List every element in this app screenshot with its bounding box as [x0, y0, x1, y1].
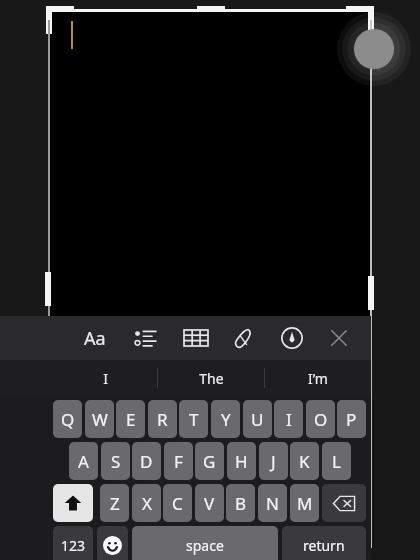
button[interactable]: U	[243, 400, 272, 438]
button[interactable]: space	[132, 526, 278, 560]
staticText: The	[199, 369, 224, 388]
button[interactable]: I’m	[265, 360, 371, 396]
button[interactable]: T	[179, 400, 208, 438]
staticText: space	[186, 536, 224, 555]
button[interactable]: V	[195, 484, 224, 522]
button[interactable]: H	[227, 442, 256, 480]
staticText: L	[332, 450, 341, 473]
button[interactable]: Text format	[74, 320, 116, 356]
button[interactable]: F	[164, 442, 193, 480]
staticText: Y	[221, 408, 231, 431]
button[interactable]: Emoji	[97, 526, 128, 560]
button[interactable]: S	[101, 442, 130, 480]
button[interactable]: D	[132, 442, 161, 480]
staticText: Aa	[84, 326, 106, 351]
staticText: K	[299, 450, 310, 473]
staticText: Z	[110, 492, 120, 515]
staticText: P	[346, 408, 357, 431]
staticText: C	[172, 492, 183, 515]
staticText: 123	[61, 536, 86, 555]
button[interactable]: L	[322, 442, 351, 480]
staticText: J	[271, 450, 276, 473]
button[interactable]: G	[195, 442, 224, 480]
staticText: N	[266, 492, 279, 515]
button[interactable]: R	[148, 400, 177, 438]
staticText: return	[303, 536, 345, 555]
staticText: B	[235, 492, 247, 515]
button[interactable]: return	[282, 526, 366, 560]
button[interactable]: Attach	[223, 320, 265, 356]
button[interactable]: I	[274, 400, 303, 438]
staticText: F	[174, 450, 183, 473]
button[interactable]: M	[290, 484, 319, 522]
button[interactable]: C	[163, 484, 192, 522]
staticText: T	[189, 408, 199, 431]
button[interactable]: X	[132, 484, 161, 522]
button[interactable]: I	[53, 360, 157, 396]
staticText: G	[203, 450, 216, 473]
staticText: R	[157, 408, 168, 431]
staticText: I	[103, 369, 108, 388]
button[interactable]: J	[259, 442, 288, 480]
button[interactable]: Shift	[53, 484, 93, 522]
staticText: Q	[61, 408, 75, 431]
button[interactable]: B	[226, 484, 255, 522]
staticText: M	[297, 492, 313, 515]
button[interactable]: Table	[175, 320, 217, 356]
staticText: X	[142, 492, 152, 515]
button[interactable]: The	[158, 360, 264, 396]
button[interactable]: Z	[100, 484, 129, 522]
button[interactable]: W	[85, 400, 114, 438]
staticText: I	[286, 408, 292, 431]
button[interactable]: Markup	[271, 320, 313, 356]
staticText: H	[235, 450, 248, 473]
button[interactable]: Checklist	[124, 320, 166, 356]
staticText: I’m	[308, 369, 328, 388]
button[interactable]: N	[258, 484, 287, 522]
button[interactable]: Close keyboard	[318, 320, 360, 356]
staticText: E	[126, 408, 136, 431]
staticText: V	[204, 492, 215, 515]
staticText: S	[111, 450, 121, 473]
button[interactable]: Backspace	[322, 484, 366, 522]
button[interactable]: E	[116, 400, 145, 438]
button[interactable]: 123	[53, 526, 93, 560]
button[interactable]: P	[337, 400, 366, 438]
button[interactable]: A	[69, 442, 98, 480]
staticText: U	[251, 408, 264, 431]
button[interactable]: Q	[53, 400, 82, 438]
staticText: A	[78, 450, 89, 473]
button[interactable]: Y	[211, 400, 240, 438]
staticText: O	[314, 408, 328, 431]
staticText: D	[140, 450, 153, 473]
button[interactable]: K	[290, 442, 319, 480]
other: Touch indicator	[337, 12, 411, 86]
staticText: W	[92, 408, 108, 431]
button[interactable]: O	[306, 400, 335, 438]
